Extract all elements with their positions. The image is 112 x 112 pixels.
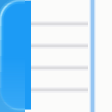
button[interactable]: Documents	[0, 0, 112, 112]
